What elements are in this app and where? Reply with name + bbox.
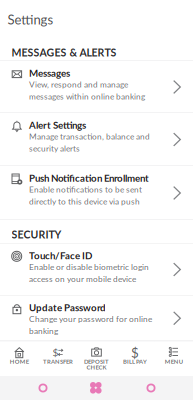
button[interactable]: Push Notification Enrollment bbox=[0, 166, 193, 220]
staticText: Enable or disable biometric login bbox=[29, 262, 149, 272]
staticText: banking bbox=[29, 326, 58, 336]
staticText: View, respond and manage bbox=[29, 79, 128, 89]
staticText: access on your mobile device bbox=[29, 274, 136, 284]
staticText: Change your password for online bbox=[29, 314, 152, 324]
staticText: Update Password bbox=[29, 302, 106, 313]
staticText: Settings bbox=[8, 12, 54, 27]
button[interactable]: Alert Settings bbox=[0, 113, 193, 166]
button[interactable]: HOME bbox=[0, 341, 39, 375]
staticText: $ bbox=[52, 346, 58, 358]
button[interactable]: Touch/Face ID bbox=[0, 243, 193, 295]
staticText: $ bbox=[131, 344, 139, 360]
staticText: Manage transaction, balance and bbox=[29, 131, 150, 141]
staticText: HOME bbox=[10, 358, 29, 365]
staticText: Push Notification Enrollment bbox=[29, 172, 149, 184]
staticText: security alerts bbox=[29, 143, 80, 153]
button[interactable]: DEPOSIT bbox=[77, 341, 116, 375]
staticText: directly to this device via push bbox=[29, 196, 140, 206]
staticText: MENU bbox=[165, 358, 183, 365]
staticText: Alert Settings bbox=[29, 119, 86, 131]
staticText: Touch/Face ID bbox=[29, 250, 92, 261]
staticText: Messages bbox=[29, 67, 70, 79]
staticText: DEPOSIT bbox=[84, 358, 109, 365]
button[interactable]: MENU bbox=[154, 341, 193, 375]
button[interactable]: Messages bbox=[0, 61, 193, 113]
staticText: MESSAGES & ALERTS bbox=[12, 46, 117, 59]
staticText: SECURITY bbox=[12, 228, 62, 241]
staticText: Enable notifications to be sent bbox=[29, 184, 142, 194]
button[interactable]: $ bbox=[116, 341, 154, 375]
button[interactable]: Update Password bbox=[0, 295, 193, 341]
staticText: CHECK bbox=[86, 364, 106, 371]
staticText: TRANSFER bbox=[43, 358, 73, 365]
staticText: BILL PAY bbox=[123, 358, 147, 365]
button[interactable]: $ bbox=[39, 341, 77, 375]
staticText: messages within online banking bbox=[29, 91, 145, 101]
